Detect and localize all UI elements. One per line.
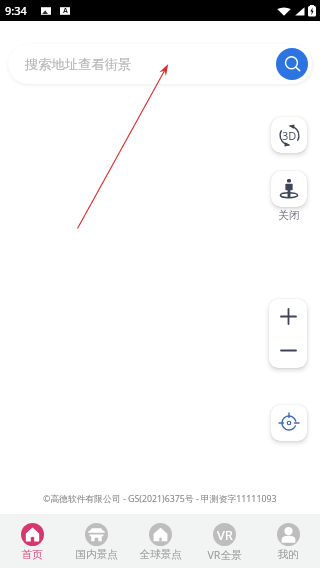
button[interactable]: 放大 [269,299,307,333]
button[interactable]: 缩小 [269,333,307,368]
staticText: 首页 [21,548,43,561]
staticText: 搜索地址查看街景 [25,56,132,73]
button[interactable]: 街景 [271,171,307,207]
staticText: 3D [282,128,297,143]
staticText: 国内景点 [75,548,118,561]
button[interactable]: 全球景点 [128,517,192,566]
button[interactable]: 国内景点 [64,517,128,566]
button[interactable]: 首页 [0,517,64,566]
staticText: 关闭 [278,209,300,222]
staticText: VR全景 [207,548,242,562]
button[interactable]: 搜索 [276,48,308,80]
button[interactable]: 搜索地址查看街景 [8,44,312,84]
staticText: ©高德软件有限公司 - GS(2021)6375号 - 甲测资字11111093 [43,493,277,505]
button[interactable]: 3D视角 [271,117,307,153]
staticText: 全球景点 [139,548,182,561]
staticText: 9:34 [5,3,27,18]
staticText: VR [217,526,233,544]
button[interactable]: 定位 [271,405,307,441]
staticText: A [63,6,68,16]
button[interactable]: VR [192,517,256,567]
button[interactable]: 我的 [256,517,320,566]
staticText: 我的 [277,548,299,561]
